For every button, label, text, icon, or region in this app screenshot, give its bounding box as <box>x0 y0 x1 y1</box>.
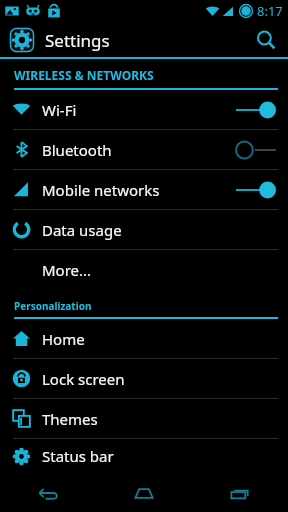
button[interactable]: Search <box>244 22 288 57</box>
button[interactable]: Lock screen <box>0 359 288 398</box>
staticText: Personalization <box>14 299 92 313</box>
button[interactable]: Back <box>0 473 96 512</box>
staticText: Status bar <box>42 446 114 466</box>
button[interactable]: Wi-Fi on <box>228 90 284 129</box>
button[interactable]: Recent apps <box>192 473 288 512</box>
button[interactable]: Mobile networks on <box>228 170 284 209</box>
button[interactable]: Status bar <box>0 439 288 473</box>
staticText: Bluetooth <box>42 140 112 160</box>
staticText: Themes <box>42 409 98 429</box>
button[interactable]: Home <box>0 319 288 358</box>
button[interactable]: Bluetooth off <box>228 130 284 169</box>
button[interactable]: Wi-Fi <box>0 90 288 129</box>
button[interactable]: Mobile networks <box>0 170 288 209</box>
staticText: Wi-Fi <box>42 100 77 120</box>
staticText: Settings <box>45 29 110 52</box>
staticText: 8:17 <box>257 2 283 20</box>
button[interactable]: Home <box>96 473 192 512</box>
staticText: Lock screen <box>42 369 125 389</box>
staticText: WIRELESS & NETWORKS <box>14 67 154 83</box>
button[interactable]: Themes <box>0 399 288 438</box>
staticText: Mobile networks <box>42 180 160 200</box>
button[interactable]: Bluetooth <box>0 130 288 169</box>
staticText: Home <box>42 329 85 349</box>
button[interactable]: More... <box>0 250 288 289</box>
staticText: More... <box>42 260 92 280</box>
button[interactable]: Data usage <box>0 210 288 249</box>
staticText: Data usage <box>42 220 122 240</box>
